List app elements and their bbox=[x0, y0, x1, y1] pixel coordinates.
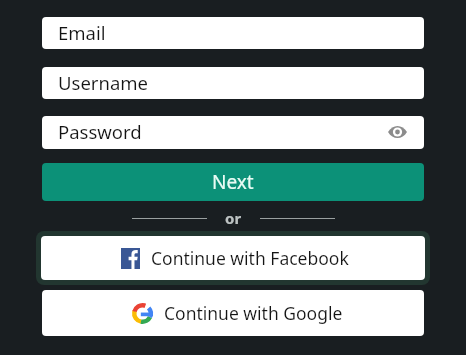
staticText: Username bbox=[58, 70, 149, 95]
staticText: Email bbox=[58, 20, 106, 45]
button[interactable]: Username bbox=[42, 67, 424, 99]
staticText: Continue with Facebook bbox=[151, 246, 349, 270]
button[interactable]: Email bbox=[42, 17, 424, 49]
staticText: Next bbox=[212, 169, 254, 195]
button[interactable]: Password bbox=[42, 116, 424, 149]
staticText: Password bbox=[58, 119, 142, 144]
button[interactable]: Next bbox=[42, 163, 424, 201]
button[interactable]: Continue with Google bbox=[42, 290, 424, 336]
button[interactable]: Show password bbox=[387, 122, 407, 142]
staticText: or bbox=[225, 208, 242, 228]
button[interactable]: Continue with Facebook bbox=[36, 231, 430, 285]
staticText: Continue with Google bbox=[164, 301, 343, 325]
